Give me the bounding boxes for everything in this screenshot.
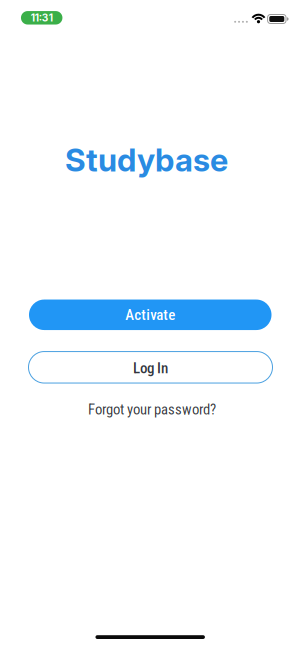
staticText: Log In: [133, 359, 168, 377]
button[interactable]: Log In: [28, 352, 272, 383]
button[interactable]: Forgot your password?: [88, 401, 216, 418]
staticText: Activate: [125, 306, 175, 324]
staticText: 11:31: [31, 12, 53, 24]
button[interactable]: Activate: [29, 300, 271, 330]
staticText: Studybase: [65, 141, 228, 179]
staticText: Forgot your password?: [88, 401, 216, 418]
